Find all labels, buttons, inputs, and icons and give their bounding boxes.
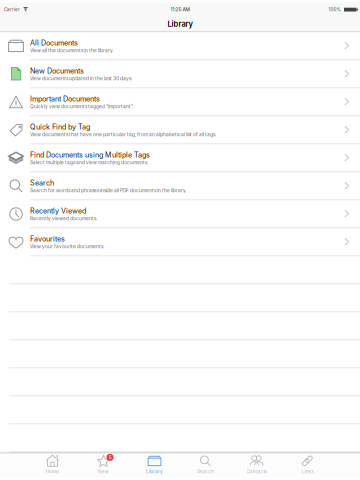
button[interactable]: Search	[180, 453, 231, 477]
staticText: Links	[301, 469, 313, 474]
button[interactable]: Library	[129, 453, 180, 477]
staticText: Quick Find by Tag	[30, 123, 90, 131]
staticText: Search for words and phrases inside all …	[30, 188, 186, 193]
staticText: New	[98, 469, 109, 474]
staticText: Recently Viewed	[30, 207, 86, 215]
button[interactable]: Recently Viewed	[0, 200, 360, 228]
staticText: View all the documents in the library.	[30, 48, 113, 53]
staticText: Carrier	[4, 7, 20, 12]
staticText: New Documents	[30, 67, 84, 75]
staticText: Home	[46, 469, 59, 474]
staticText: Favourites	[30, 235, 65, 243]
button[interactable]: Quick Find by Tag	[0, 116, 360, 144]
staticText: Library	[167, 19, 192, 29]
staticText: All Documents	[30, 39, 78, 47]
staticText: View documents that have one particular …	[30, 132, 216, 137]
button[interactable]: 5	[78, 453, 129, 477]
staticText: View documents updated in the last 30 da…	[30, 76, 132, 81]
staticText: Find Documents using Multiple Tags	[30, 151, 150, 159]
staticText: 11:25 AM	[170, 7, 189, 12]
staticText: Quickly view documents tagged "Important…	[30, 104, 134, 109]
button[interactable]: Contacts	[231, 453, 282, 477]
staticText: Contacts	[246, 469, 266, 474]
staticText: 5	[108, 454, 111, 461]
button[interactable]: Links	[282, 453, 333, 477]
staticText: View your favourite documents.	[30, 244, 104, 249]
staticText: Select multiple tags and view matching d…	[30, 160, 148, 165]
staticText: Important Documents	[30, 95, 100, 103]
staticText: 100%	[328, 7, 341, 12]
staticText: Search	[197, 469, 214, 474]
staticText: Recently viewed documents.	[30, 216, 97, 221]
staticText: Library	[146, 469, 163, 474]
button[interactable]: Home	[27, 453, 78, 477]
button[interactable]: All Documents	[0, 32, 360, 60]
button[interactable]: Favourites	[0, 228, 360, 256]
button[interactable]: New Documents	[0, 60, 360, 88]
staticText: Search	[30, 179, 54, 187]
button[interactable]: Important Documents	[0, 88, 360, 116]
button[interactable]: Search	[0, 172, 360, 200]
button[interactable]: Find Documents using Multiple Tags	[0, 144, 360, 172]
